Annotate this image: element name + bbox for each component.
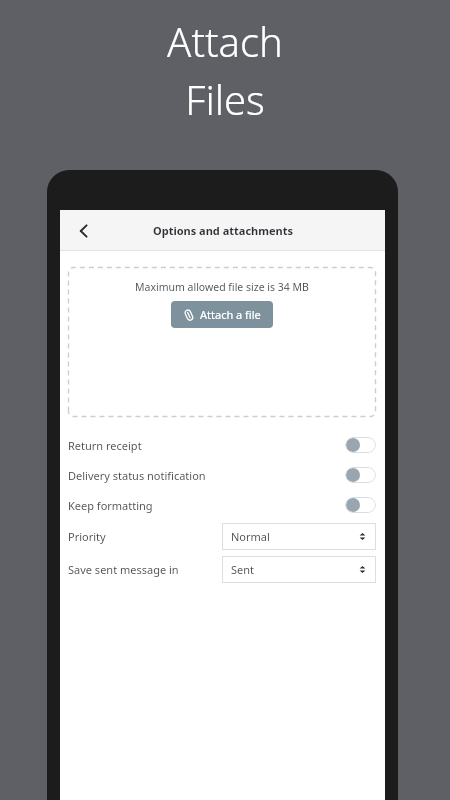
staticText: Attach [167, 14, 283, 68]
staticText: Maximum allowed file size is 34 MB [135, 280, 309, 294]
staticText: Options and attachments [153, 223, 293, 238]
button[interactable]: Keep formatting [60, 490, 385, 520]
button[interactable]: Sent [222, 556, 376, 583]
staticText: Delivery status notification [68, 468, 206, 483]
staticText: Attach a file [200, 307, 261, 322]
button[interactable]: Normal [222, 523, 376, 550]
staticText: Priority [68, 529, 222, 544]
staticText: Files [185, 72, 265, 126]
button[interactable]: Delivery status notification [60, 460, 385, 490]
staticText: Save sent message in [68, 562, 222, 577]
staticText: Keep formatting [68, 498, 153, 513]
staticText: Normal [231, 529, 270, 544]
button[interactable]: Return receipt [60, 430, 385, 460]
staticText: Sent [231, 562, 255, 577]
button[interactable]: Back [68, 215, 100, 247]
button[interactable]: Attach a file [171, 301, 273, 328]
staticText: Return receipt [68, 438, 142, 453]
